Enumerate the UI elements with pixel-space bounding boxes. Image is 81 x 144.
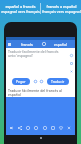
- staticText: Pegar: [16, 79, 26, 84]
- staticText: Traducir facilmente del francés unto 'es…: [8, 49, 59, 58]
- button[interactable]: Menu: [6, 41, 13, 48]
- staticText: francés: [21, 42, 34, 47]
- button[interactable]: Copy: [50, 125, 56, 131]
- staticText: Traducir: [51, 79, 65, 84]
- button[interactable]: Clear: [68, 68, 74, 74]
- button[interactable]: español a francés espagnol vers français: [0, 0, 40, 17]
- staticText: Traduce fácilmente del francés al españo…: [8, 88, 62, 97]
- button[interactable]: Camera: [39, 79, 44, 84]
- button[interactable]: Favourite: [58, 125, 64, 131]
- button[interactable]: Close: [66, 125, 72, 131]
- button[interactable]: Listen: [68, 52, 74, 58]
- button[interactable]: Swap languages: [41, 41, 47, 47]
- button[interactable]: Star: [33, 125, 39, 131]
- button[interactable]: Microphone: [33, 79, 38, 84]
- button[interactable]: Share: [17, 125, 23, 131]
- button[interactable]: Copy: [68, 60, 74, 66]
- button[interactable]: Rate: [25, 125, 31, 131]
- button[interactable]: francés a español français vers espagnol: [41, 0, 81, 17]
- staticText: español: [54, 42, 67, 47]
- button[interactable]: Volume: [9, 125, 15, 131]
- staticText: francés a español français vers espagnol: [42, 4, 81, 14]
- button[interactable]: Pegar: [12, 78, 30, 85]
- button[interactable]: Traducir: [47, 78, 69, 85]
- button[interactable]: History: [42, 125, 48, 131]
- staticText: español a francés espagnol vers français: [1, 4, 40, 14]
